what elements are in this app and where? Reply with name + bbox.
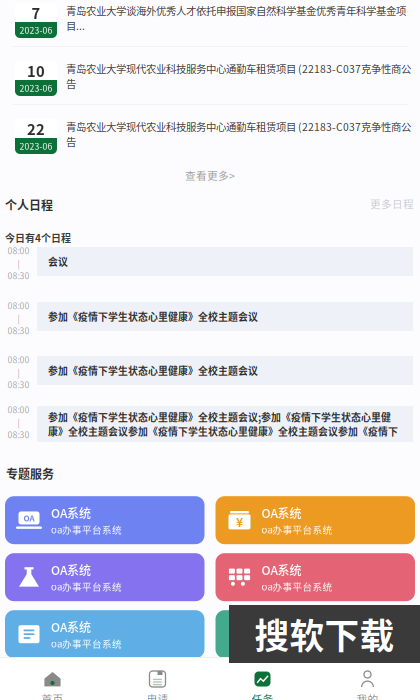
button[interactable]: 首页 — [0, 658, 105, 700]
button[interactable]: 08:00 — [0, 354, 420, 394]
staticText: OA — [23, 512, 34, 524]
staticText: 2023-06 — [19, 24, 52, 36]
button[interactable]: 更多日程 — [370, 196, 414, 213]
staticText: 08:30 — [7, 269, 29, 282]
staticText: 参加《疫情下学生状态心里健康》全校主题会议 — [48, 309, 258, 324]
staticText: 会议 — [48, 254, 68, 269]
staticText: 参加《疫情下学生状态心里健康》全校主题会议 — [48, 363, 258, 378]
staticText: 我的 — [356, 691, 378, 700]
button[interactable]: OA系统 — [215, 553, 415, 601]
button[interactable]: 22 — [0, 119, 420, 154]
staticText: 08:00 — [7, 299, 29, 312]
staticText: | — [17, 366, 19, 378]
staticText: 今日有4个日程 — [5, 230, 71, 245]
staticText: 个人日程 — [5, 196, 53, 213]
staticText: | — [17, 416, 19, 428]
staticText: oa办事平台系统 — [51, 522, 122, 536]
staticText: 08:30 — [7, 428, 29, 441]
staticText: 08:00 — [7, 244, 29, 257]
staticText: 22 — [27, 118, 45, 139]
button[interactable]: 08:00 — [0, 300, 420, 340]
staticText: 08:30 — [7, 378, 29, 391]
button[interactable]: 任务 — [210, 658, 315, 700]
staticText: OA系统 — [261, 561, 301, 578]
staticText: oa办事平台系统 — [261, 579, 332, 593]
button[interactable]: 我的 — [315, 658, 420, 700]
staticText: 搜软下载 — [254, 609, 394, 659]
staticText: 申请 — [146, 691, 168, 700]
staticText: oa办事平台系统 — [261, 522, 332, 536]
button[interactable]: 10 — [0, 61, 420, 96]
staticText: 青岛农业大学现代农业科技服务中心通勤车租赁项目 (22183-C037克争性商公… — [66, 61, 411, 91]
button[interactable]: OA — [5, 496, 204, 544]
staticText: OA系统 — [51, 504, 91, 521]
staticText: 参加《疫情下学生状态心里健康》全校主题会议;参加《疫情下学生状态心里健康》全校主… — [48, 410, 398, 438]
button[interactable]: OA系统 — [215, 610, 415, 658]
button[interactable]: 08:00 — [0, 404, 420, 444]
staticText: 青岛农业大学现代农业科技服务中心通勤车租赁项目 (22183-C037克争性商公… — [66, 119, 411, 149]
staticText: | — [17, 257, 19, 269]
button[interactable]: 7 — [0, 3, 420, 38]
staticText: 08:00 — [7, 403, 29, 416]
staticText: 任务 — [251, 691, 273, 700]
staticText: 2023-06 — [19, 140, 52, 152]
staticText: | — [17, 312, 19, 324]
button[interactable]: OA系统 — [5, 553, 204, 601]
staticText: OA系统 — [51, 561, 91, 578]
staticText: ¥ — [236, 513, 243, 531]
staticText: 2023-06 — [19, 82, 52, 94]
staticText: oa办事平台系统 — [261, 636, 332, 650]
staticText: 更多日程 — [370, 196, 414, 211]
staticText: OA系统 — [261, 618, 301, 635]
button[interactable]: 08:00 — [0, 245, 420, 285]
staticText: 首页 — [41, 691, 63, 700]
staticText: oa办事平台系统 — [51, 636, 122, 650]
button[interactable]: OA系统 — [5, 610, 204, 658]
staticText: oa办事平台系统 — [51, 579, 122, 593]
staticText: 10 — [27, 60, 45, 81]
staticText: 青岛农业大学谈海外优秀人才依托申报国家自然科学基金优秀青年科学基金项目... — [66, 3, 406, 33]
staticText: 查看更多> — [185, 167, 235, 183]
button[interactable]: 申请 — [105, 658, 210, 700]
button[interactable]: 查看更多> — [0, 164, 420, 186]
staticText: OA系统 — [51, 618, 91, 635]
staticText: 08:30 — [7, 324, 29, 337]
staticText: 专题服务 — [6, 465, 54, 482]
staticText: 7 — [31, 2, 40, 23]
staticText: OA系统 — [261, 504, 301, 521]
button[interactable]: ¥ — [215, 496, 415, 544]
staticText: 08:00 — [7, 353, 29, 366]
